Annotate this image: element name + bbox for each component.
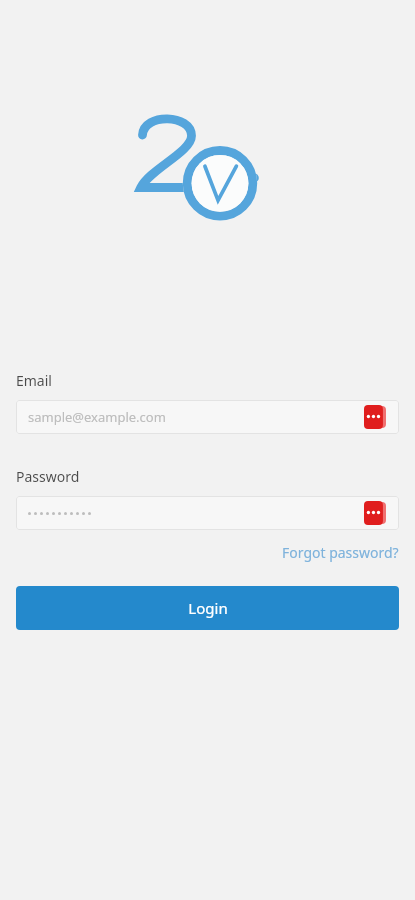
staticText: sample@example.com	[28, 408, 166, 426]
button[interactable]: Login	[16, 586, 399, 630]
button[interactable]: sample@example.com	[16, 400, 399, 434]
button[interactable]: Autofill password	[364, 501, 386, 525]
button[interactable]: Forgot password?	[282, 541, 415, 564]
button[interactable]: Autofill password	[364, 405, 386, 429]
staticText: Forgot password?	[282, 543, 399, 562]
button[interactable]: Autofill password	[16, 496, 399, 530]
staticText: Password	[16, 467, 80, 486]
staticText: Email	[16, 371, 52, 390]
staticText: Login	[188, 598, 228, 618]
